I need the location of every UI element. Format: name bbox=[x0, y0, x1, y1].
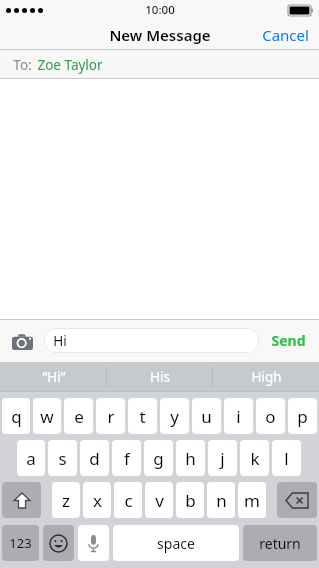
button[interactable]: His bbox=[107, 362, 213, 392]
button[interactable]: h bbox=[176, 440, 205, 476]
staticText: “Hi” bbox=[42, 368, 66, 386]
button[interactable]: return bbox=[243, 525, 317, 561]
staticText: return bbox=[259, 534, 301, 553]
button[interactable]: f bbox=[112, 440, 141, 476]
button[interactable]: j bbox=[208, 440, 237, 476]
staticText: b bbox=[185, 489, 196, 512]
button[interactable]: s bbox=[48, 440, 77, 476]
staticText: r bbox=[107, 405, 115, 428]
staticText: n bbox=[216, 489, 227, 512]
button[interactable]: b bbox=[176, 482, 204, 518]
staticText: 10:00 bbox=[145, 2, 175, 18]
button[interactable]: Emoji bbox=[43, 525, 74, 561]
button[interactable]: High bbox=[213, 362, 319, 392]
staticText: z bbox=[62, 489, 70, 512]
button[interactable]: o bbox=[256, 398, 285, 434]
button[interactable]: k bbox=[240, 440, 269, 476]
button[interactable]: y bbox=[160, 398, 189, 434]
staticText: l bbox=[284, 447, 289, 470]
staticText: 123 bbox=[9, 534, 32, 552]
staticText: e bbox=[74, 405, 84, 428]
staticText: s bbox=[58, 447, 67, 470]
staticText: w bbox=[40, 405, 54, 428]
staticText: v bbox=[155, 489, 164, 512]
button[interactable]: Send bbox=[267, 327, 310, 354]
button[interactable]: i bbox=[224, 398, 253, 434]
staticText: u bbox=[201, 405, 212, 428]
button[interactable]: 123 bbox=[2, 525, 39, 561]
staticText: f bbox=[124, 447, 130, 470]
button[interactable]: x bbox=[83, 482, 111, 518]
staticText: p bbox=[297, 405, 308, 428]
button[interactable]: Cancel bbox=[252, 21, 319, 49]
button[interactable]: To: bbox=[0, 50, 319, 79]
button[interactable]: Camera bbox=[9, 328, 35, 354]
button[interactable]: “Hi” bbox=[0, 362, 107, 392]
button[interactable]: Hi bbox=[44, 328, 259, 353]
button[interactable]: m bbox=[238, 482, 266, 518]
button[interactable]: g bbox=[144, 440, 173, 476]
staticText: Zoe Taylor bbox=[37, 56, 103, 74]
staticText: x bbox=[93, 489, 102, 512]
staticText: His bbox=[150, 368, 170, 386]
button[interactable]: n bbox=[207, 482, 235, 518]
button[interactable]: c bbox=[114, 482, 142, 518]
staticText: o bbox=[265, 405, 276, 428]
staticText: j bbox=[220, 447, 225, 470]
button[interactable]: v bbox=[145, 482, 173, 518]
staticText: k bbox=[250, 447, 260, 470]
staticText: y bbox=[170, 405, 179, 428]
button[interactable]: Dictation bbox=[78, 525, 109, 561]
button[interactable]: Shift bbox=[2, 482, 41, 518]
staticText: c bbox=[124, 489, 133, 512]
staticText: Hi bbox=[53, 332, 67, 350]
staticText: High bbox=[251, 368, 282, 386]
staticText: space bbox=[157, 534, 195, 553]
staticText: g bbox=[153, 447, 164, 470]
button[interactable]: l bbox=[272, 440, 301, 476]
staticText: Cancel bbox=[262, 25, 309, 45]
staticText: To: bbox=[13, 56, 32, 74]
button[interactable]: z bbox=[52, 482, 80, 518]
button[interactable]: Backspace bbox=[277, 482, 317, 518]
button[interactable]: u bbox=[192, 398, 221, 434]
button[interactable]: space bbox=[113, 525, 239, 561]
button[interactable]: t bbox=[128, 398, 157, 434]
button[interactable]: q bbox=[2, 398, 30, 434]
staticText: a bbox=[26, 447, 36, 470]
staticText: q bbox=[11, 405, 22, 428]
staticText: New Message bbox=[109, 25, 211, 45]
staticText: Send bbox=[271, 331, 306, 350]
staticText: t bbox=[139, 405, 146, 428]
button[interactable]: r bbox=[96, 398, 125, 434]
button[interactable]: a bbox=[17, 440, 45, 476]
staticText: d bbox=[89, 447, 100, 470]
staticText: h bbox=[185, 447, 196, 470]
staticText: i bbox=[236, 405, 241, 428]
button[interactable]: e bbox=[64, 398, 93, 434]
button[interactable]: w bbox=[33, 398, 61, 434]
button[interactable]: p bbox=[288, 398, 317, 434]
staticText: m bbox=[244, 489, 260, 512]
button[interactable]: d bbox=[80, 440, 109, 476]
